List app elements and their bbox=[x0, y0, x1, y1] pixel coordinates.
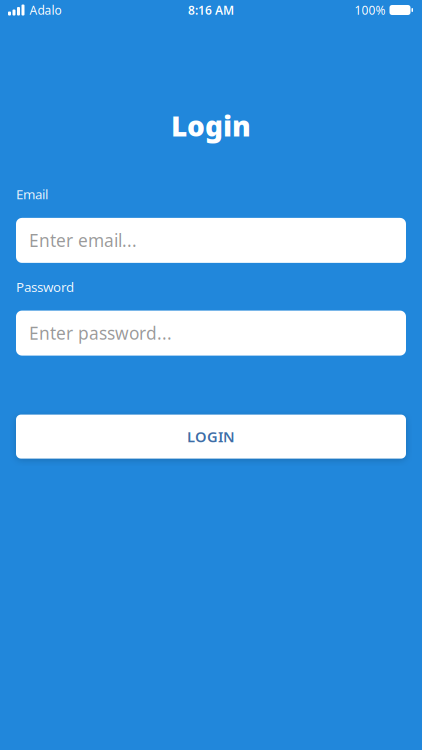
button[interactable]: LOGIN bbox=[16, 415, 406, 459]
staticText: Email bbox=[16, 185, 48, 203]
staticText: 100% bbox=[354, 2, 385, 18]
staticText: Login bbox=[171, 107, 251, 144]
staticText: LOGIN bbox=[187, 427, 235, 446]
staticText: Adalo bbox=[29, 2, 61, 18]
staticText: 8:16 AM bbox=[188, 2, 234, 18]
staticText: Password bbox=[16, 278, 74, 296]
staticText: Enter email... bbox=[29, 229, 137, 252]
staticText: Enter password... bbox=[29, 322, 172, 345]
button[interactable]: Enter email... bbox=[16, 218, 406, 263]
button[interactable]: Enter password... bbox=[16, 311, 406, 356]
